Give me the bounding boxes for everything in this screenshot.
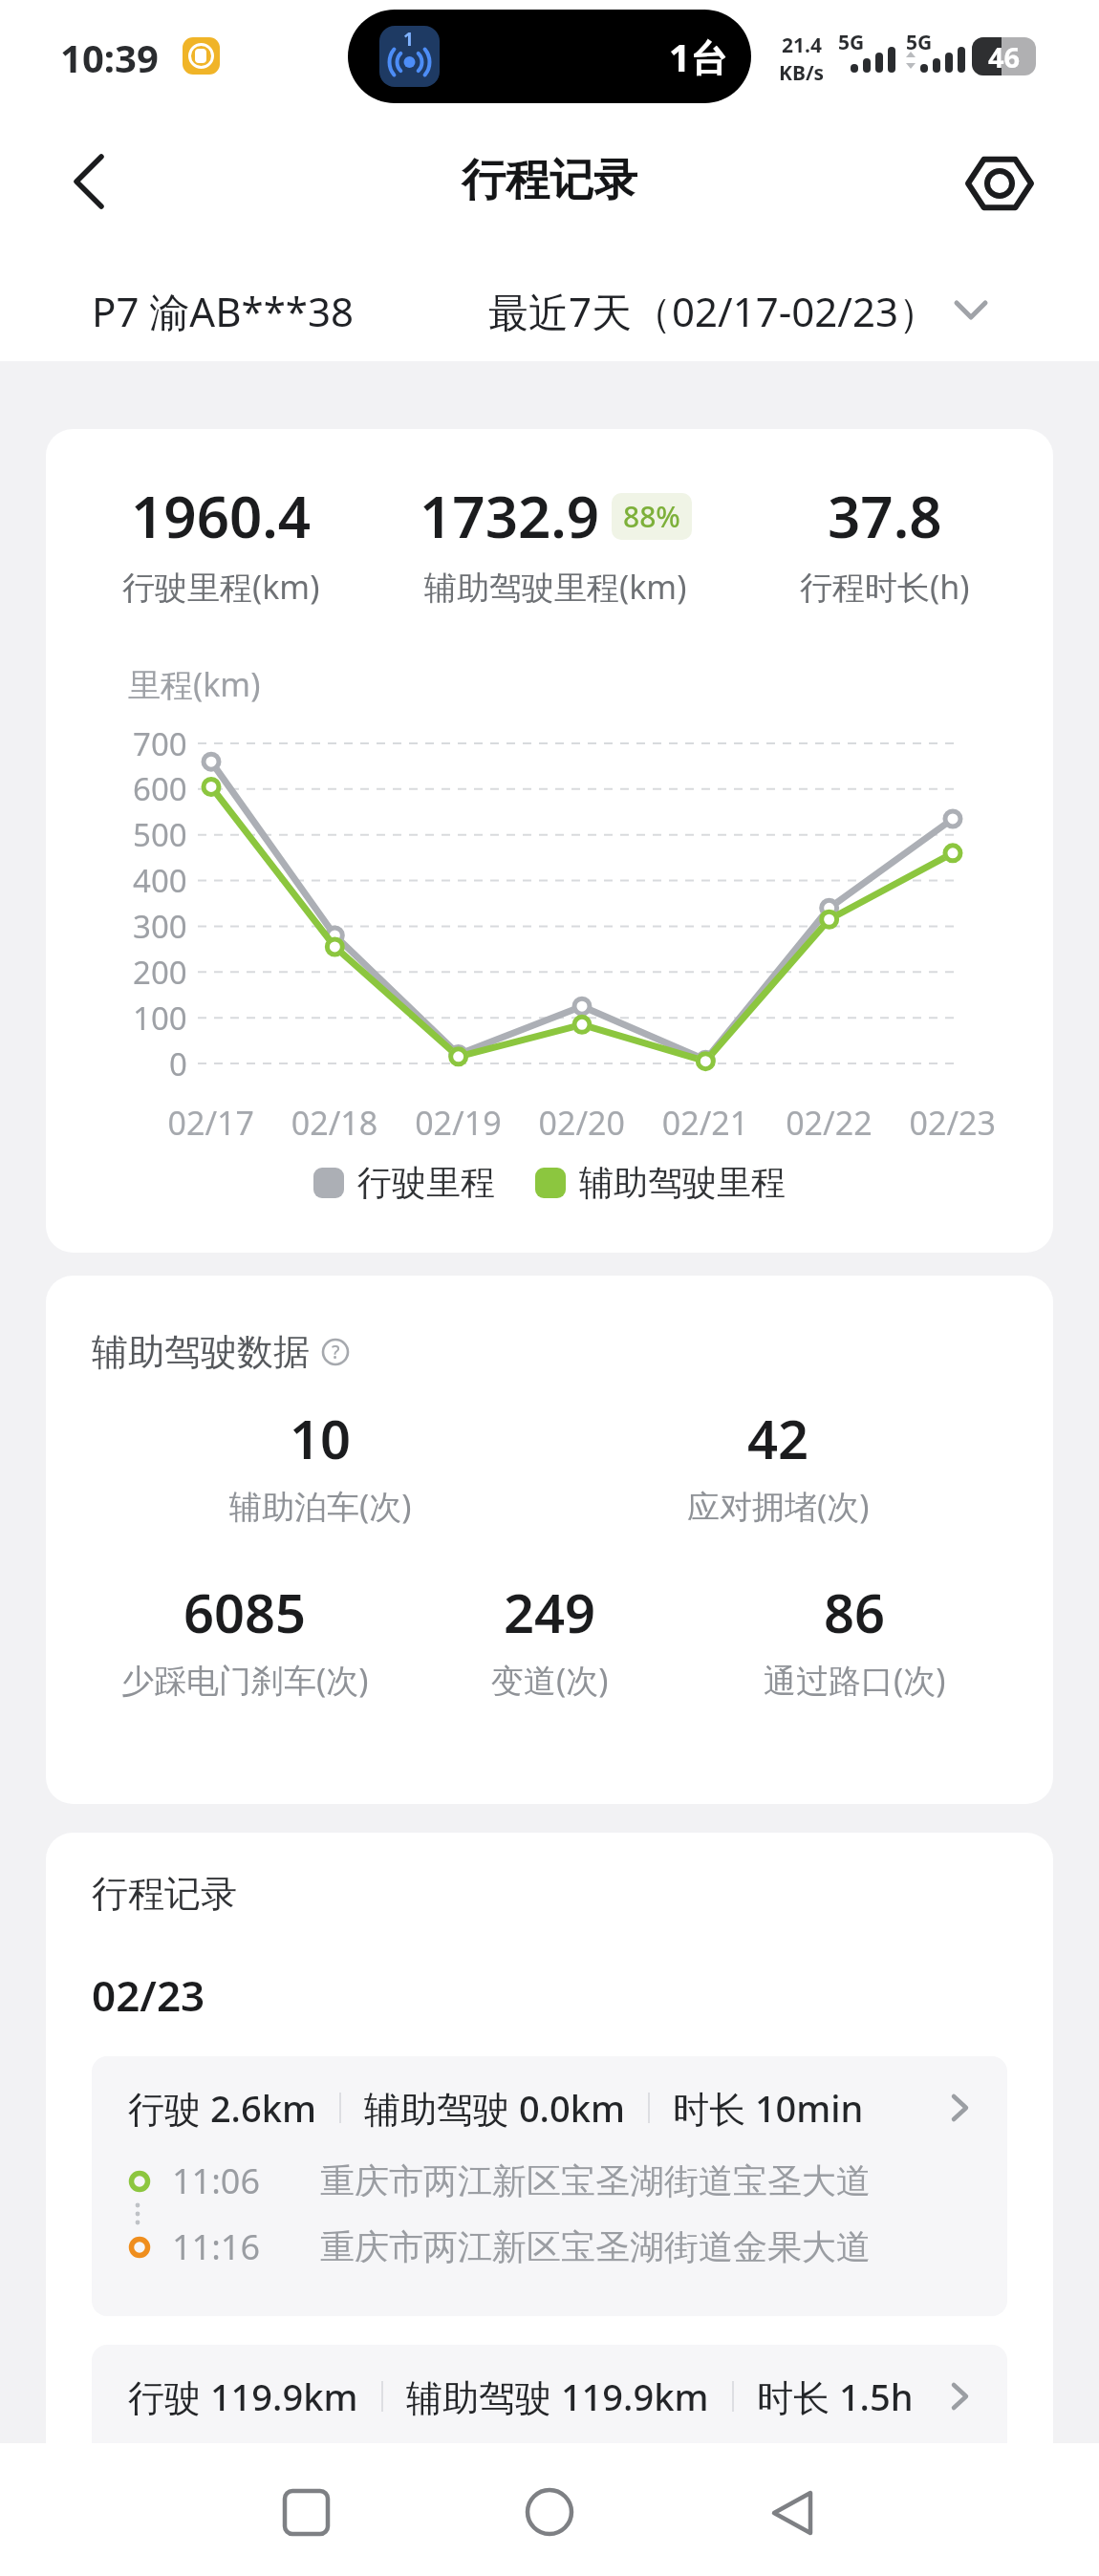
button[interactable] <box>283 2489 331 2537</box>
staticText: 5G <box>838 29 865 56</box>
staticText: 88% <box>623 497 680 536</box>
staticText: 辅助驾驶 0.0km <box>364 2083 625 2133</box>
staticText: 行程记录 <box>462 153 637 208</box>
staticText: 辅助驾驶数据 <box>92 1329 310 1375</box>
staticText: 通过路口(次) <box>764 1658 946 1702</box>
staticText: 46 <box>988 38 1021 75</box>
staticText: 10:39 <box>60 32 159 83</box>
staticText: 辅助驾驶里程 <box>579 1161 786 1204</box>
staticText: 行驶 119.9km <box>128 2372 358 2421</box>
staticText: 1 <box>403 27 414 52</box>
staticText: 1台 <box>669 32 728 82</box>
button[interactable] <box>525 2487 574 2537</box>
staticText: 少踩电门刹车(次) <box>121 1658 369 1702</box>
staticText: 1960.4 <box>131 477 312 555</box>
staticText: 时长 10min <box>673 2083 864 2133</box>
staticText: 21.4 <box>782 32 822 59</box>
button[interactable]: 最近7天（02/17-02/23） <box>488 284 988 338</box>
staticText: 行程时长(h) <box>800 565 970 609</box>
staticText: 02/23 <box>92 1966 205 2024</box>
staticText: 249 <box>504 1576 596 1648</box>
button[interactable]: 行驶 2.6km <box>92 2056 1007 2316</box>
button[interactable] <box>54 143 130 220</box>
staticText: 5G <box>906 29 933 56</box>
staticText: 86 <box>824 1576 886 1648</box>
staticText: 辅助泊车(次) <box>229 1484 412 1528</box>
staticText: 6085 <box>183 1576 307 1648</box>
staticText: 里程(km) <box>128 662 261 706</box>
staticText: 重庆市两江新区宝圣湖街道宝圣大道 <box>320 2159 871 2202</box>
staticText: 行驶 2.6km <box>128 2083 316 2133</box>
button[interactable] <box>956 143 1042 225</box>
staticText: 10 <box>290 1402 352 1474</box>
staticText: 最近7天（02/17-02/23） <box>488 284 938 338</box>
staticText: ? <box>332 1340 340 1364</box>
button[interactable]: P7 渝AB***38 <box>92 284 354 338</box>
staticText: 变道(次) <box>491 1658 609 1702</box>
staticText: 37.8 <box>828 477 942 555</box>
staticText: 辅助驾驶里程(km) <box>424 565 687 609</box>
staticText: 1732.9 <box>420 477 600 555</box>
staticText: 重庆市两江新区宝圣湖街道金果大道 <box>320 2225 871 2268</box>
button[interactable]: 行驶 119.9km <box>92 2345 1007 2576</box>
staticText: P7 渝AB***38 <box>92 284 354 338</box>
staticText: KB/s <box>779 59 825 87</box>
staticText: 应对拥堵(次) <box>687 1484 870 1528</box>
staticText: 时长 1.5h <box>757 2372 914 2421</box>
staticText: 11:16 <box>172 2223 261 2270</box>
staticText: 行程记录 <box>92 1871 237 1917</box>
staticText: 行驶里程 <box>357 1161 495 1204</box>
button[interactable]: ? <box>321 1338 350 1366</box>
staticText: 11:06 <box>172 2157 261 2204</box>
staticText: 辅助驾驶 119.9km <box>406 2372 709 2421</box>
staticText: 行驶里程(km) <box>122 565 320 609</box>
staticText: 42 <box>747 1402 809 1474</box>
button[interactable] <box>768 2489 818 2539</box>
